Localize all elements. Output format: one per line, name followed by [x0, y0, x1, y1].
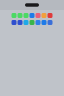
button[interactable]: App [17, 13, 22, 18]
button[interactable]: App [29, 13, 34, 18]
button[interactable]: App [41, 13, 46, 18]
button[interactable]: App [47, 20, 52, 25]
button[interactable]: App [11, 20, 16, 25]
button[interactable]: App [47, 13, 52, 18]
button[interactable]: App [17, 20, 22, 25]
button[interactable]: App [23, 13, 28, 18]
button[interactable]: App [41, 20, 46, 25]
button[interactable]: App [29, 20, 34, 25]
button[interactable]: App [11, 13, 16, 18]
button[interactable]: App [35, 13, 40, 18]
button[interactable]: App [35, 20, 40, 25]
button[interactable]: App [23, 20, 28, 25]
